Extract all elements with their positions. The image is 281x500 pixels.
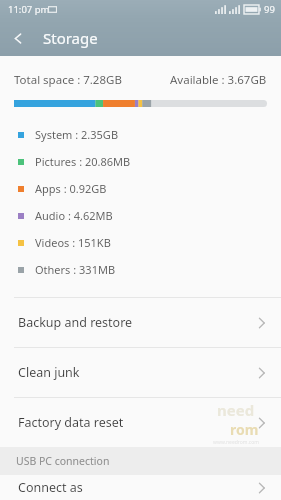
staticText: rom [230, 420, 259, 439]
staticText: 99 [264, 3, 275, 16]
staticText: Connect as [18, 479, 83, 496]
button[interactable]: Factory data reset [0, 398, 281, 447]
staticText: Available : 3.67GB [170, 72, 267, 88]
staticText: Total space : 7.28GB [14, 72, 122, 88]
staticText: Apps : 0.92GB [35, 181, 107, 196]
staticText: Audio : 4.62MB [35, 208, 113, 223]
button[interactable]: Back [0, 20, 36, 56]
staticText: Backup and restore [18, 314, 133, 331]
button[interactable]: Backup and restore [0, 298, 281, 347]
staticText: Pictures : 20.86MB [35, 154, 131, 169]
staticText: System : 2.35GB [35, 127, 119, 142]
staticText: Others : 331MB [35, 262, 116, 277]
staticText: need [217, 400, 255, 420]
staticText: Factory data reset [18, 414, 124, 431]
staticText: USB PC connection [16, 454, 110, 468]
staticText: Clean junk [18, 364, 80, 381]
button[interactable]: Connect as [0, 475, 281, 500]
staticText: 11:07 pm [8, 3, 50, 16]
staticText: Storage [43, 28, 98, 48]
button[interactable]: Clean junk [0, 348, 281, 397]
staticText: Videos : 151KB [35, 235, 111, 250]
staticText: www.needrom.com [213, 439, 259, 446]
